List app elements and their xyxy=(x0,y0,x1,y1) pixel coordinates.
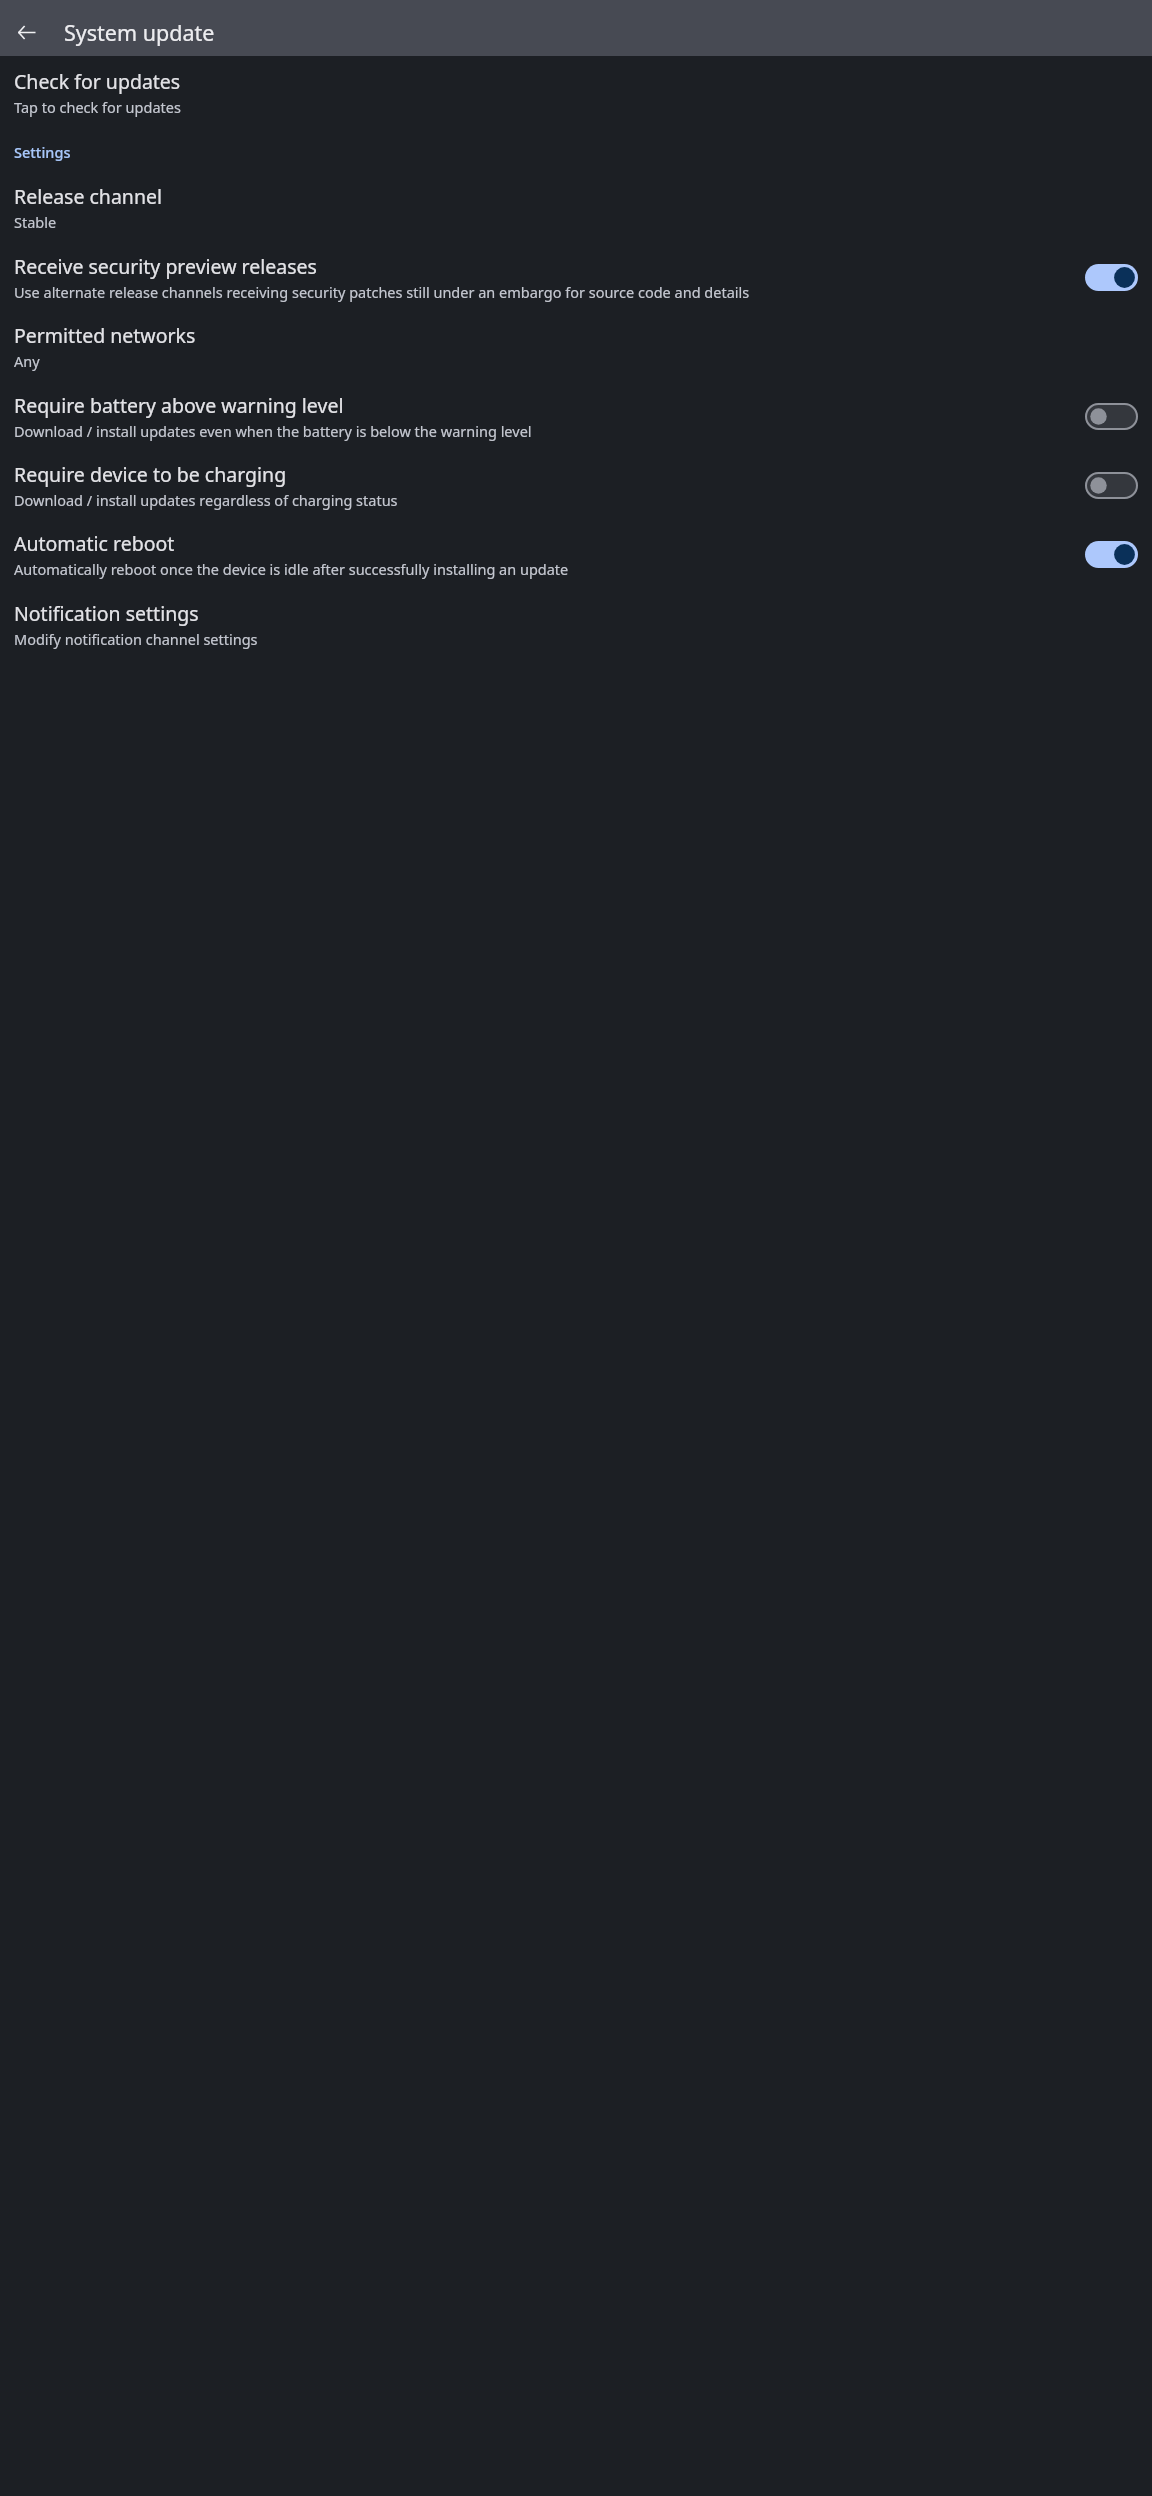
staticText: Stable xyxy=(14,212,57,232)
staticText: Require device to be charging xyxy=(14,461,287,488)
staticText: Automatic reboot xyxy=(14,530,175,557)
button[interactable]: On xyxy=(1085,541,1138,568)
staticText: Release channel xyxy=(14,183,162,210)
staticText: Download / install updates regardless of… xyxy=(14,490,398,510)
button[interactable]: On xyxy=(1085,264,1138,291)
button[interactable]: Release channel xyxy=(0,183,1152,232)
staticText: Any xyxy=(14,351,40,371)
staticText: Settings xyxy=(14,142,71,162)
button[interactable]: Check for updates xyxy=(0,68,1152,117)
button[interactable]: Notification settings xyxy=(0,600,1152,649)
button[interactable]: Require device to be charging xyxy=(0,461,1152,510)
button[interactable]: Permitted networks xyxy=(0,322,1152,371)
staticText: Automatically reboot once the device is … xyxy=(14,559,569,579)
staticText: Notification settings xyxy=(14,600,199,627)
staticText: Check for updates xyxy=(14,68,181,95)
button[interactable]: Off xyxy=(1085,472,1138,499)
staticText: Download / install updates even when the… xyxy=(14,421,532,441)
button[interactable]: Receive security preview releases xyxy=(0,253,1152,302)
button[interactable]: Automatic reboot xyxy=(0,530,1152,579)
staticText: Modify notification channel settings xyxy=(14,629,258,649)
button[interactable]: Off xyxy=(1085,403,1138,430)
staticText: Require battery above warning level xyxy=(14,392,344,419)
staticText: Receive security preview releases xyxy=(14,253,317,280)
button[interactable]: Require battery above warning level xyxy=(0,392,1152,441)
button[interactable]: Back xyxy=(6,12,46,52)
staticText: System update xyxy=(64,18,215,47)
staticText: Permitted networks xyxy=(14,322,196,349)
staticText: Tap to check for updates xyxy=(14,97,181,117)
staticText: Use alternate release channels receiving… xyxy=(14,282,750,302)
